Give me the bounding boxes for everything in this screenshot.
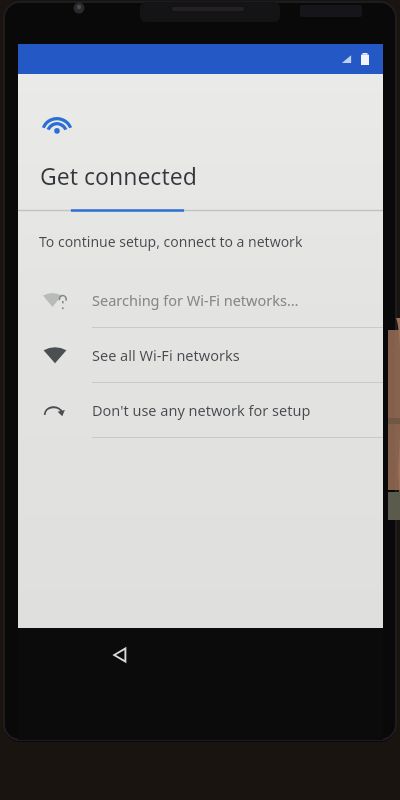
button[interactable]: Searching for Wi-Fi networks…	[18, 273, 383, 327]
staticText: Searching for Wi-Fi networks…	[92, 290, 299, 310]
button[interactable]: Don't use any network for setup	[18, 383, 383, 437]
staticText: Don't use any network for setup	[92, 400, 311, 420]
button[interactable]: See all Wi-Fi networks	[18, 328, 383, 382]
staticText: Get connected	[40, 160, 197, 191]
staticText: See all Wi-Fi networks	[92, 345, 240, 365]
button[interactable]: Back	[88, 634, 152, 676]
staticText: To continue setup, connect to a network	[39, 232, 303, 251]
